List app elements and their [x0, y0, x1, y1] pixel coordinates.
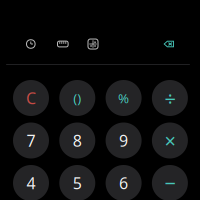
staticText: C	[26, 87, 36, 109]
staticText: ×	[164, 127, 175, 154]
staticText: 9	[119, 130, 128, 151]
button[interactable]: ÷	[152, 80, 188, 116]
button[interactable]: 4	[13, 165, 49, 200]
staticText: 7	[26, 130, 35, 151]
button[interactable]: 8	[59, 122, 95, 158]
button[interactable]: ()	[59, 80, 95, 116]
button[interactable]: ×	[152, 122, 188, 158]
button[interactable]: Recents	[26, 38, 57, 50]
staticText: 4	[26, 172, 35, 194]
staticText: 8	[73, 130, 82, 151]
button[interactable]: Delete	[162, 38, 174, 50]
button[interactable]: 5	[59, 165, 95, 200]
staticText: 5	[73, 172, 82, 194]
staticText: −	[164, 170, 175, 196]
staticText: %	[118, 89, 129, 107]
button[interactable]: 9	[106, 122, 142, 158]
button[interactable]: 6	[106, 165, 142, 200]
button[interactable]: 7	[13, 122, 49, 158]
staticText: ÷	[164, 85, 175, 111]
staticText: 6	[119, 172, 128, 194]
button[interactable]: %	[106, 80, 142, 116]
staticText: ()	[73, 89, 81, 107]
button[interactable]: Calculator	[88, 38, 119, 50]
button[interactable]: C	[13, 80, 49, 116]
button[interactable]: Convert	[57, 38, 88, 50]
button[interactable]: −	[152, 165, 188, 200]
